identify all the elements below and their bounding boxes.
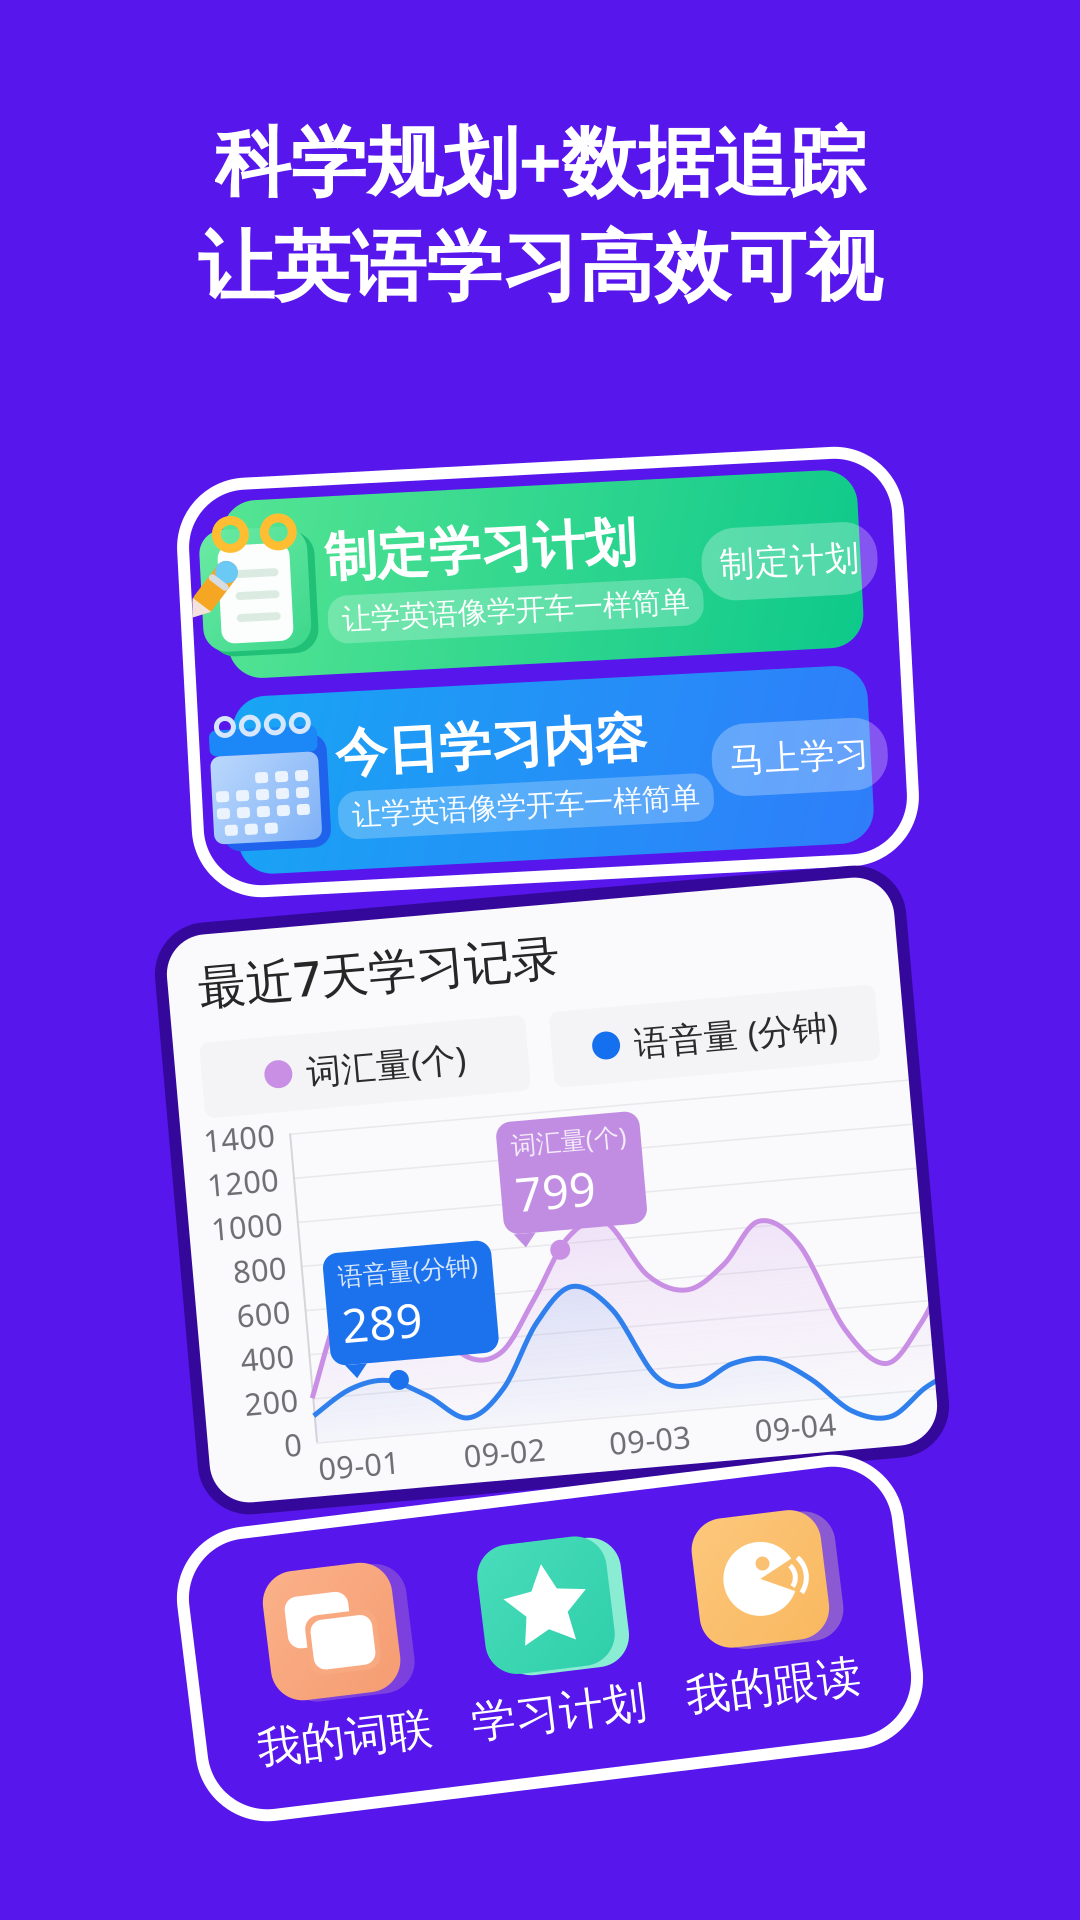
staticText: 制定学习计划 (331, 515, 643, 579)
staticText: 09-01 (295, 1427, 377, 1467)
staticText: 799 (515, 1160, 596, 1222)
staticText: 让英语学习高效可视 (198, 221, 882, 314)
staticText: 让学英语像学开车一样简单 (345, 787, 693, 823)
staticText: 1000 (209, 1179, 281, 1220)
staticText: 400 (227, 1312, 281, 1352)
button[interactable]: 我的词联 (246, 1536, 422, 1740)
button[interactable]: 我的跟读 (678, 1536, 854, 1740)
staticText: 我的跟读 (678, 1686, 854, 1740)
button[interactable]: 今日学习内容 (230, 681, 866, 859)
button[interactable]: 语音量 (分钟) (564, 1013, 891, 1089)
staticText: 词汇量(个) (317, 1028, 477, 1074)
staticText: 马上学习 (725, 749, 865, 791)
staticText: 09-03 (587, 1427, 669, 1467)
staticText: 800 (227, 1223, 281, 1264)
button[interactable]: 词汇量(个) (213, 1013, 540, 1089)
staticText: 600 (227, 1268, 281, 1308)
staticText: 语音量 (分钟) (646, 1028, 850, 1074)
staticText: 学习计划 (462, 1686, 638, 1740)
staticText: 09-04 (733, 1427, 815, 1467)
staticText: 1400 (209, 1090, 281, 1131)
button[interactable]: 制定学习计划 (230, 485, 866, 663)
staticText: 今日学习内容 (331, 711, 643, 775)
button[interactable]: 学习计划 (462, 1536, 638, 1740)
staticText: 1200 (209, 1135, 281, 1175)
staticText: 0 (263, 1400, 281, 1441)
staticText: 289 (331, 1275, 412, 1337)
staticText: 科学规划+数据追踪 (214, 110, 865, 211)
staticText: 语音量(分钟) (331, 1241, 472, 1274)
staticText: 最近7天学习记录 (217, 925, 580, 989)
staticText: 我的词联 (246, 1686, 422, 1740)
staticText: 让学英语像学开车一样简单 (345, 591, 693, 627)
staticText: 09-02 (441, 1427, 523, 1467)
staticText: 词汇量(个) (515, 1125, 631, 1159)
staticText: 200 (227, 1356, 281, 1397)
staticText: 制定计划 (725, 553, 865, 595)
